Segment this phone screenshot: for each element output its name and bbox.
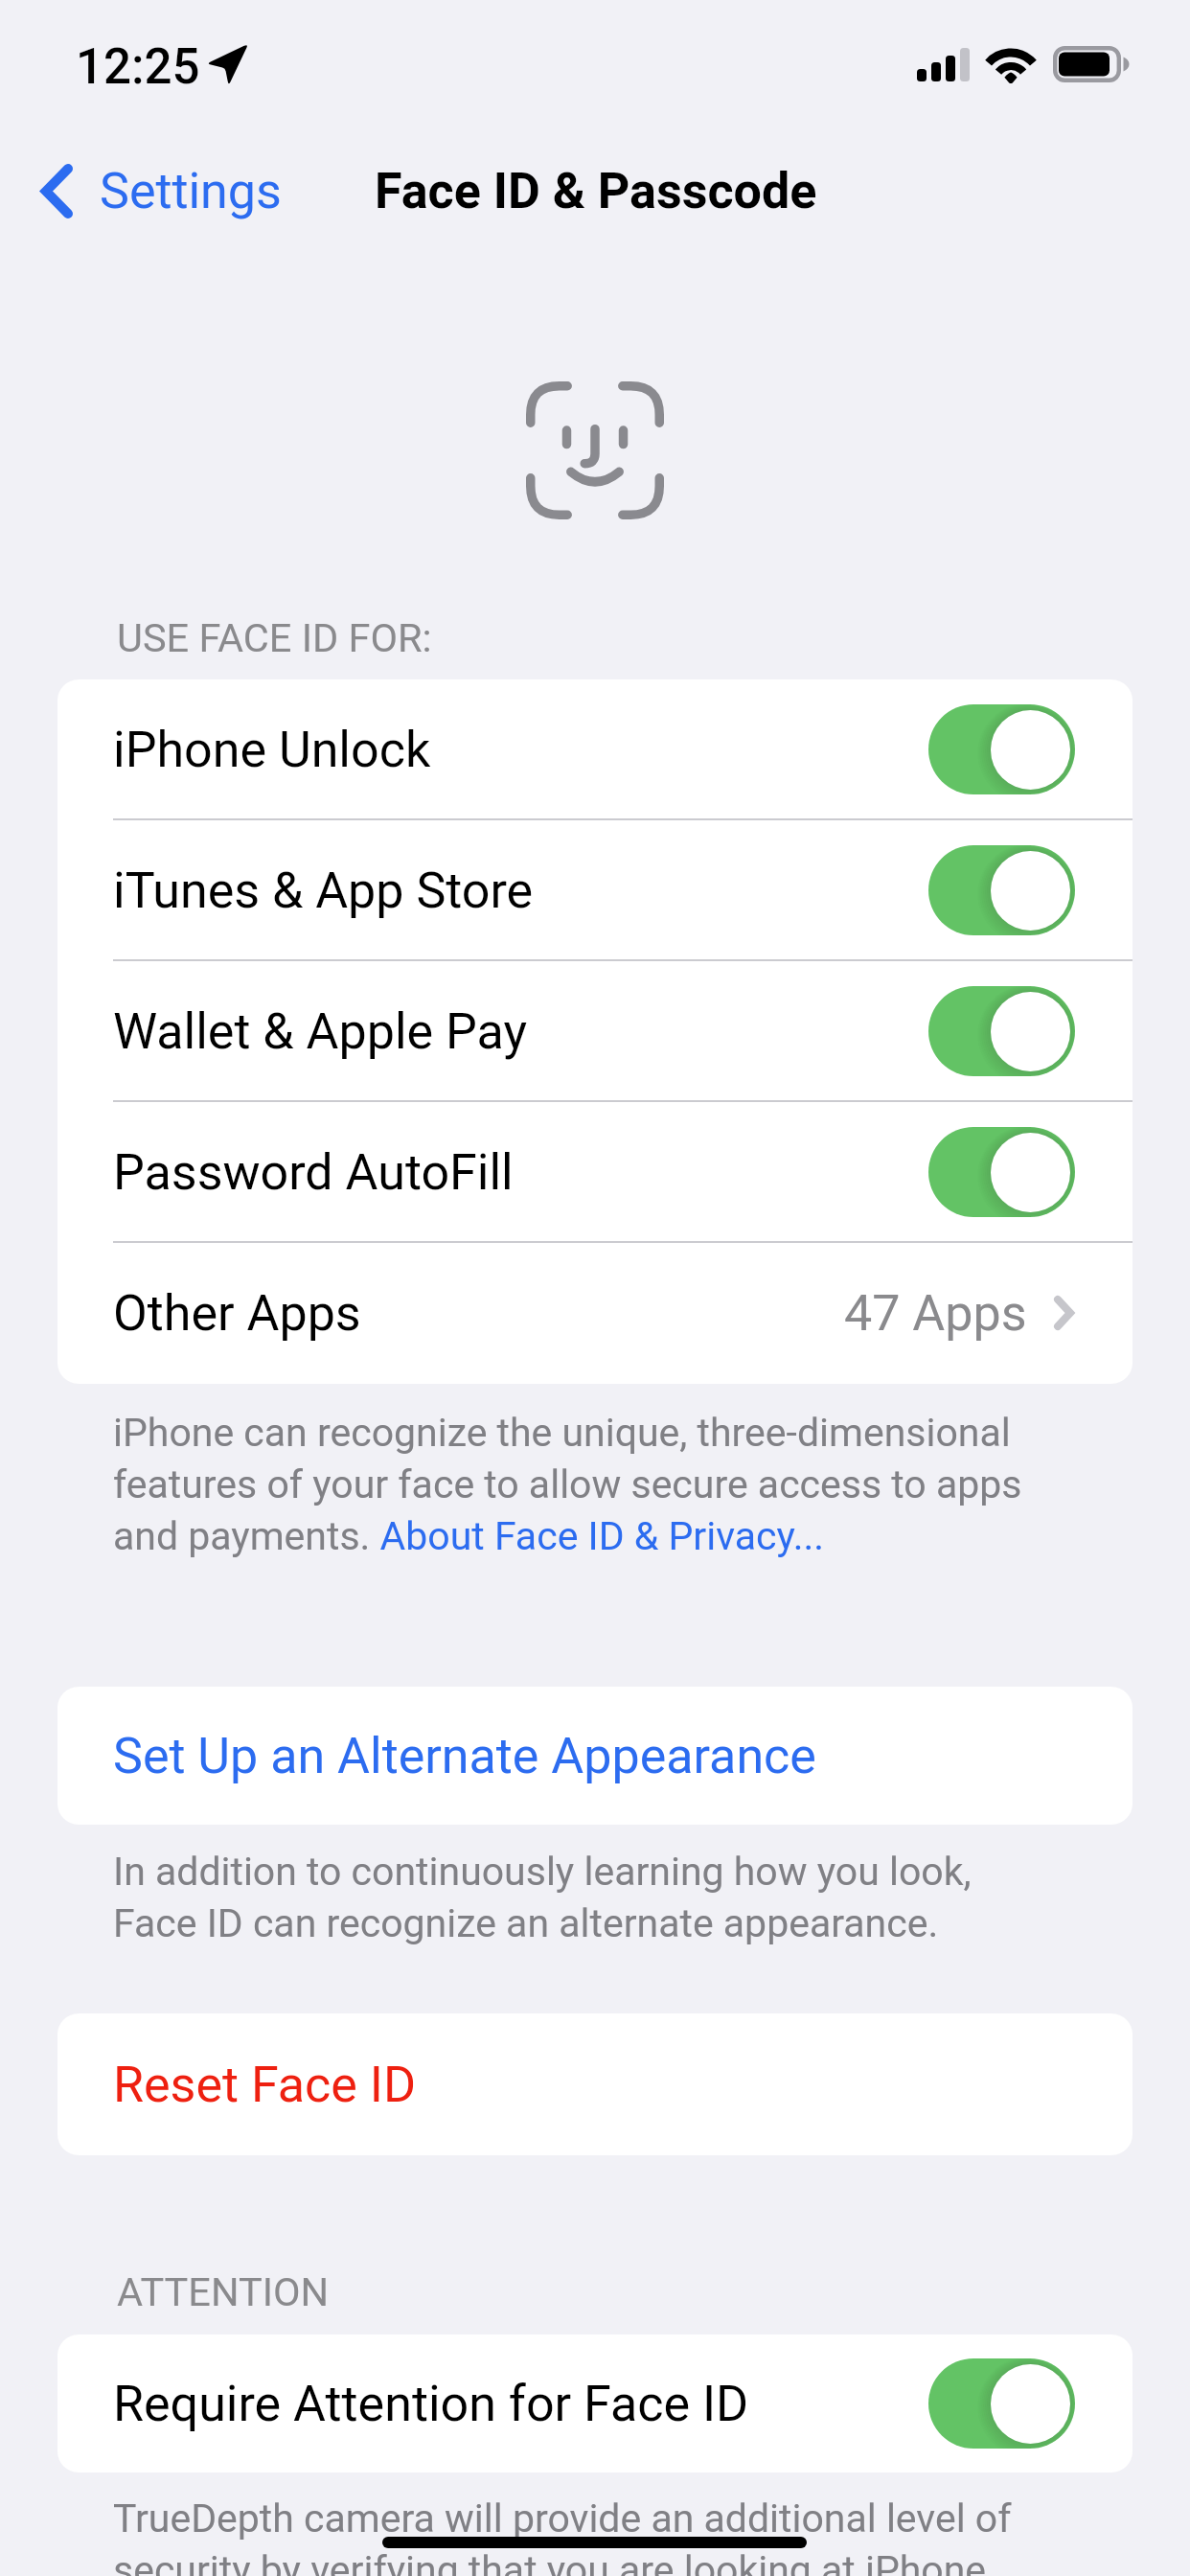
button[interactable]: Toggle on [928,704,1075,794]
staticText: TrueDepth camera will provide an additio… [113,2491,1014,2576]
staticText: 47 Apps [844,1284,1027,1342]
button[interactable]: Set Up an Alternate Appearance [57,1687,1133,1825]
button[interactable]: Toggle on [928,986,1075,1076]
staticText: 12:25 [76,38,200,96]
staticText: iPhone Unlock [113,721,431,778]
button[interactable]: Password AutoFill [57,1102,1133,1241]
staticText: Face ID & Passcode [375,162,817,220]
staticText: ATTENTION [117,2266,330,2316]
staticText: In addition to continuously learning how… [113,1844,975,1947]
button[interactable]: Toggle on [928,845,1075,935]
staticText: iPhone can recognize the unique, three-d… [113,1405,1052,1560]
button[interactable]: Other Apps [57,1243,1133,1382]
staticText: iTunes & App Store [113,862,534,919]
staticText: Reset Face ID [113,2056,417,2113]
staticText: Other Apps [113,1284,361,1342]
staticText: Require Attention for Face ID [113,2375,749,2432]
other: Cellular signal [917,46,971,82]
button[interactable]: iTunes & App Store [57,820,1133,959]
button[interactable]: Require Attention for Face ID [57,2334,1133,2472]
staticText: Wallet & Apple Pay [113,1002,528,1060]
button[interactable]: Settings [24,152,299,230]
staticText: Password AutoFill [113,1143,514,1201]
staticText: Settings [100,162,282,220]
button[interactable]: Reset Face ID [57,2013,1133,2155]
other: Battery full [1053,46,1130,82]
other: Location active [206,43,249,86]
button[interactable]: Toggle on [928,1127,1075,1217]
other: Wi-Fi [986,44,1036,82]
staticText: USE FACE ID FOR: [117,612,432,662]
button[interactable]: Wallet & Apple Pay [57,961,1133,1100]
button[interactable]: About Face ID & Privacy... [377,1512,825,1564]
button[interactable]: iPhone Unlock [57,679,1133,818]
button[interactable]: Toggle on [928,2358,1075,2449]
staticText: Set Up an Alternate Appearance [113,1727,816,1784]
